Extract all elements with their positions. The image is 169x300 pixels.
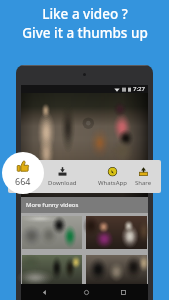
- staticText: Like a video ?: [42, 5, 128, 23]
- staticText: 664: [15, 175, 31, 187]
- button[interactable]: Recents: [119, 284, 128, 300]
- other: WhatsApp: [108, 167, 117, 176]
- other: Share: [139, 167, 148, 176]
- staticText: WhatsApp: [98, 179, 127, 187]
- staticText: 7:27: [133, 85, 145, 93]
- button[interactable]: [22, 255, 82, 284]
- button[interactable]: WhatsApp: [84, 167, 140, 187]
- button[interactable]: Home: [82, 284, 91, 300]
- staticText: Give it a thumbs up: [22, 24, 148, 42]
- staticText: More funny videos: [26, 201, 79, 209]
- button[interactable]: Like: [2, 152, 44, 194]
- button[interactable]: Share: [115, 167, 161, 187]
- other: Like: [17, 160, 29, 172]
- button[interactable]: Download: [34, 167, 90, 187]
- staticText: Download: [48, 179, 77, 187]
- button[interactable]: Back: [40, 284, 49, 300]
- button[interactable]: [22, 216, 82, 249]
- other: Download: [58, 167, 67, 176]
- staticText: Share: [135, 179, 152, 187]
- button[interactable]: [86, 255, 147, 284]
- button[interactable]: [86, 216, 147, 249]
